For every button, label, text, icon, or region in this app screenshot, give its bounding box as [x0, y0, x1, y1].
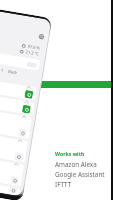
staticText: 21.3 °C — [25, 49, 40, 57]
staticText: Amazon Alexa — [55, 160, 97, 169]
staticText: Works with — [55, 150, 85, 157]
button[interactable]: Toggle device — [9, 186, 17, 194]
button[interactable]: Toggle device — [18, 128, 27, 137]
button[interactable]: Toggle device — [0, 104, 32, 139]
button[interactable]: Bedr — [8, 69, 18, 75]
button[interactable]: Toggle device — [10, 176, 19, 185]
button[interactable]: Toggle device — [0, 152, 24, 186]
button[interactable]: Toggle device — [0, 128, 28, 163]
staticText: 97.6 % — [27, 44, 41, 51]
button[interactable]: Settings — [37, 32, 46, 41]
button[interactable]: Toggle device — [0, 90, 35, 115]
button[interactable]: Toggle — [26, 62, 37, 68]
staticText: IFTTT — [55, 180, 72, 189]
button[interactable]: Toggle device — [14, 152, 23, 161]
button[interactable]: Toggle device — [0, 176, 20, 195]
button[interactable]: Party — [0, 47, 41, 71]
staticText: Google Assistant — [55, 170, 105, 179]
button[interactable]: Bedroom 1 — [0, 64, 4, 73]
button[interactable]: Toggle device — [24, 90, 33, 99]
button[interactable]: Toggle device — [22, 105, 31, 114]
button[interactable]: Toggle device — [0, 75, 37, 100]
